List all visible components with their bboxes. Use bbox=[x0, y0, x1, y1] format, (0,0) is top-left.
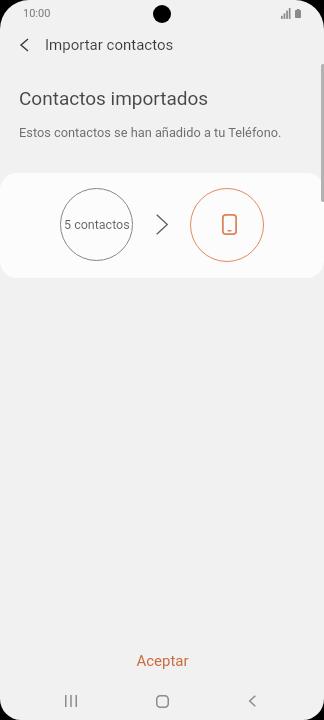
staticText: Contactos importados bbox=[19, 87, 209, 109]
button[interactable]: Home bbox=[117, 684, 208, 718]
staticText: Aceptar bbox=[136, 652, 189, 670]
staticText: Estos contactos se han añadido a tu Telé… bbox=[19, 125, 282, 140]
button[interactable]: 5 contactos bbox=[0, 173, 324, 278]
staticText: Importar contactos bbox=[45, 36, 174, 54]
button[interactable]: Recent apps bbox=[25, 684, 117, 718]
staticText: 10:00 bbox=[23, 7, 51, 20]
button[interactable]: Back bbox=[208, 684, 299, 718]
button[interactable]: Aceptar bbox=[0, 644, 324, 678]
button[interactable]: Back bbox=[7, 27, 42, 62]
staticText: 5 contactos bbox=[64, 217, 130, 232]
